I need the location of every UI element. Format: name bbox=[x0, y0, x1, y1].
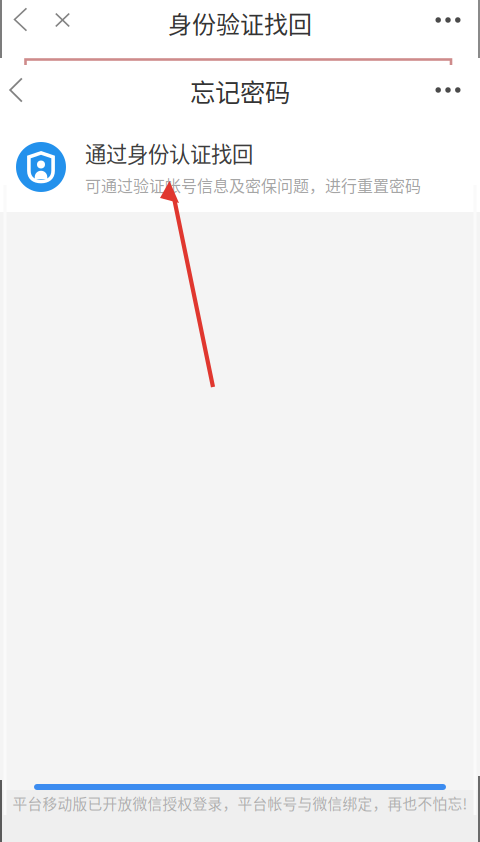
button[interactable]: Back bbox=[0, 0, 41, 47]
button[interactable]: Close bbox=[41, 0, 84, 47]
button[interactable]: 通过身份认证找回 bbox=[0, 104, 480, 212]
staticText: 可通过验证帐号信息及密保问题，进行重置密码 bbox=[85, 173, 421, 197]
staticText: 身份验证找回 bbox=[168, 6, 312, 40]
staticText: 通过身份认证找回 bbox=[85, 137, 253, 168]
button[interactable]: More options bbox=[426, 47, 470, 104]
staticText: 平台移动版已开放微信授权登录，平台帐号与微信绑定，再也不怕忘! bbox=[12, 792, 467, 814]
staticText: 忘记密码 bbox=[190, 73, 290, 109]
button[interactable]: Back bbox=[0, 47, 32, 104]
button[interactable]: More options bbox=[426, 0, 470, 47]
